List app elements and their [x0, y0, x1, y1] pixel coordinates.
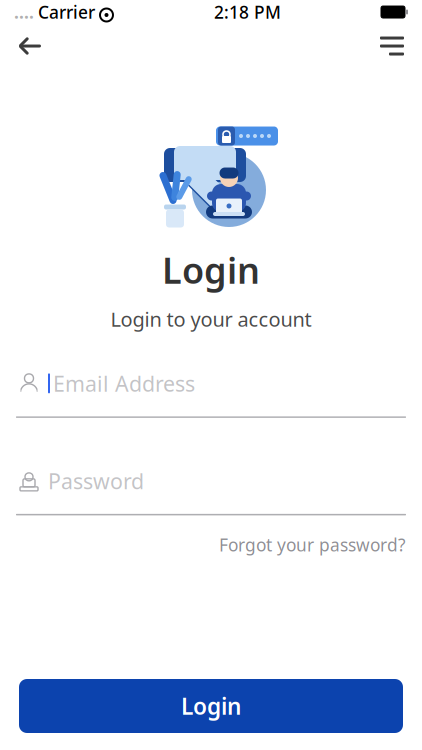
- button[interactable]: Forgot your password?: [219, 529, 406, 560]
- button[interactable]: Menu: [370, 24, 414, 68]
- staticText: ....: [14, 0, 34, 23]
- staticText: Forgot your password?: [219, 533, 406, 556]
- button[interactable]: Back: [8, 24, 52, 68]
- staticText: Email Address: [53, 369, 195, 397]
- button[interactable]: Login: [19, 679, 403, 733]
- staticText: Login: [181, 691, 241, 721]
- staticText: Password: [48, 467, 144, 495]
- staticText: 2:18 PM: [214, 0, 281, 23]
- staticText: Login: [162, 246, 260, 294]
- staticText: Carrier: [38, 0, 95, 23]
- staticText: Login to your account: [110, 306, 311, 332]
